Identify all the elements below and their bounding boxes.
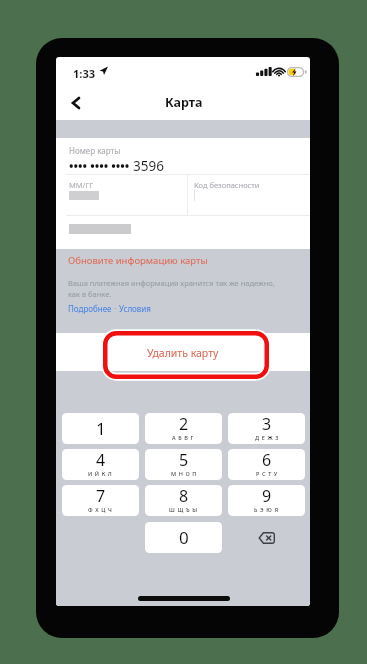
staticText: 7: [96, 485, 106, 507]
staticText: Ь Э Ю Я: [254, 506, 279, 513]
button[interactable]: 4: [62, 449, 139, 480]
button[interactable]: 1: [62, 413, 139, 444]
staticText: 8: [179, 485, 189, 507]
button[interactable]: Back: [60, 85, 92, 120]
staticText: 0: [179, 526, 189, 549]
button[interactable]: 8: [145, 485, 222, 516]
staticText: Р С Т У: [256, 470, 278, 477]
staticText: Ф Х Ц Ч: [88, 506, 113, 513]
staticText: 3: [262, 413, 272, 435]
staticText: И Й К Л: [88, 470, 113, 477]
staticText: ·: [112, 303, 119, 314]
staticText: 5: [179, 449, 189, 471]
button[interactable]: 5: [145, 449, 222, 480]
staticText: ММ/ГГ: [69, 180, 94, 190]
button[interactable]: 6: [228, 449, 305, 480]
staticText: Номер карты: [69, 145, 121, 156]
button[interactable]: Обновите информацию карты: [68, 254, 208, 267]
staticText: 3596: [133, 157, 164, 175]
button[interactable]: 9: [228, 485, 305, 516]
button[interactable]: Подробнее: [68, 303, 112, 314]
staticText: Удалить карту: [147, 346, 219, 360]
button[interactable]: 0: [145, 522, 222, 553]
button[interactable]: Backspace: [228, 522, 305, 553]
staticText: Ваша платежная информация хранится так ж…: [68, 278, 275, 299]
button[interactable]: Удалить карту: [56, 333, 310, 371]
staticText: 4: [96, 449, 106, 471]
staticText: М Н О П: [171, 470, 197, 477]
staticText: •••• •••• ••••: [69, 158, 130, 174]
staticText: 2: [179, 413, 189, 435]
staticText: 1:33: [73, 66, 95, 81]
staticText: А Б В Г: [172, 434, 195, 441]
staticText: Д Е Ж З: [255, 434, 279, 441]
staticText: 9: [262, 485, 272, 507]
staticText: 1: [96, 417, 106, 440]
button[interactable]: 2: [145, 413, 222, 444]
staticText: 6: [262, 449, 272, 471]
staticText: Карта: [165, 94, 203, 111]
staticText: Ш Щ Ъ Ы: [169, 506, 198, 513]
staticText: Код безопасности: [194, 180, 260, 190]
button[interactable]: Условия: [119, 303, 151, 314]
button[interactable]: 7: [62, 485, 139, 516]
button[interactable]: 3: [228, 413, 305, 444]
